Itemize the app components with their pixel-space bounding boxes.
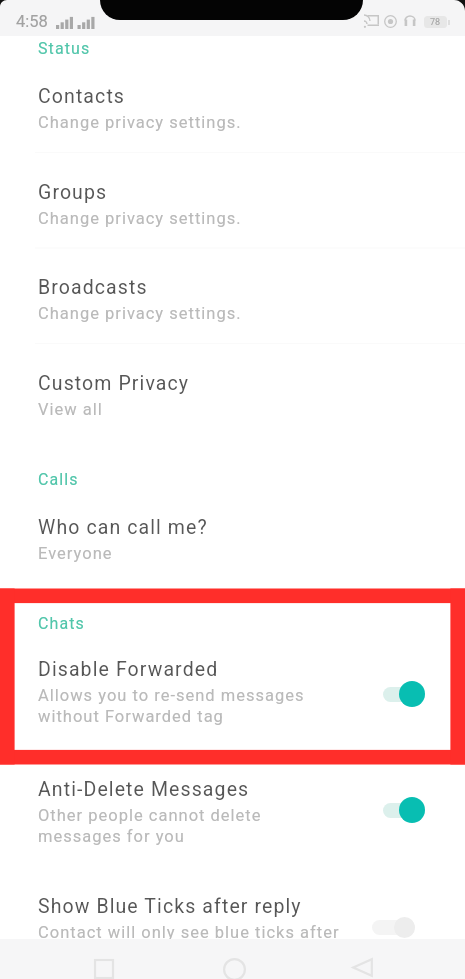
staticText: Change privacy settings. [38,304,242,323]
button[interactable]: Disable Forwarded [0,650,465,738]
button[interactable]: Anti-Delete Messages [0,770,465,858]
staticText: Everyone [38,544,113,563]
staticText: Contact will only see blue ticks after [38,923,340,942]
button[interactable]: Toggle on [383,680,425,708]
button[interactable]: Toggle on [383,796,425,824]
button[interactable]: Home [210,945,258,979]
staticText: Contacts [38,85,126,108]
staticText: Custom Privacy [38,372,190,395]
button[interactable]: Contacts [0,77,465,144]
button[interactable]: Custom Privacy [0,364,465,431]
staticText: Change privacy settings. [38,209,242,228]
staticText: Anti-Delete Messages [38,778,250,801]
staticText: 78 [430,17,441,28]
button[interactable]: Status [38,39,91,58]
staticText: Chats [38,614,85,633]
staticText: Disable Forwarded [38,658,219,681]
button[interactable]: Calls [38,470,79,489]
button[interactable]: Show Blue Ticks after reply [0,887,465,954]
staticText: Other people cannot delete messages for … [38,806,262,846]
staticText: Allows you to re-send messages without F… [38,686,305,726]
staticText: Show Blue Ticks after reply [38,895,302,918]
button[interactable]: Broadcasts [0,268,465,335]
staticText: View all [38,400,103,419]
staticText: Who can call me? [38,516,208,539]
button[interactable]: Recent apps [80,945,128,979]
staticText: Groups [38,181,108,204]
staticText: Broadcasts [38,276,148,299]
button[interactable]: Toggle off [372,913,415,941]
button[interactable]: Chats [38,614,85,633]
button[interactable]: Who can call me? [0,508,465,575]
button[interactable]: Groups [0,173,465,240]
staticText: Change privacy settings. [38,113,242,132]
staticText: Calls [38,470,79,489]
button[interactable]: Back [338,943,386,979]
staticText: Status [38,39,91,58]
staticText: 4:58 [16,12,48,31]
